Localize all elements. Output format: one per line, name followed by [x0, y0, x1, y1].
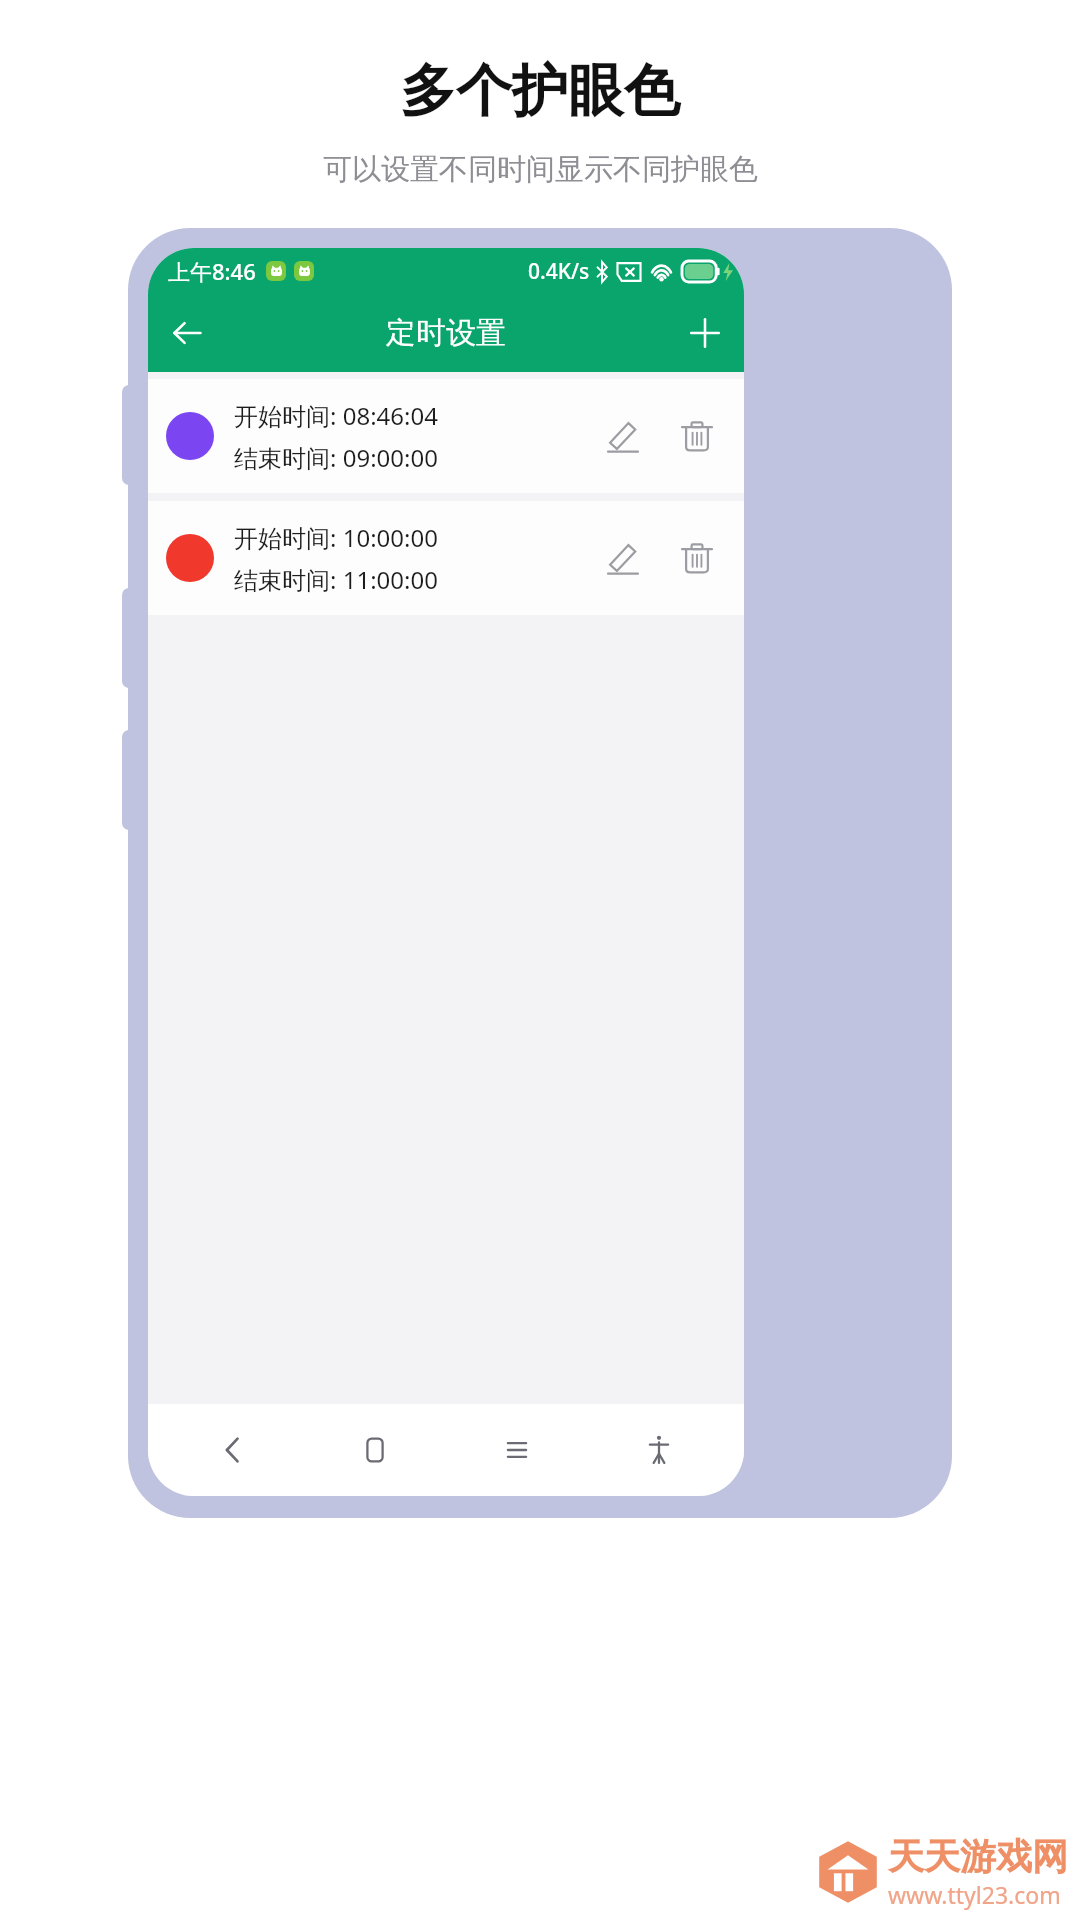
button[interactable]: Add	[674, 302, 736, 364]
staticText: 天天游戏网	[888, 1834, 1068, 1879]
staticText: 上午8:46	[168, 256, 256, 286]
button[interactable]: Home	[304, 1404, 446, 1496]
staticText: 0.4K/s	[528, 257, 590, 286]
button[interactable]: Edit	[594, 529, 652, 587]
button[interactable]: 开始时间: 08:46:04	[148, 379, 744, 493]
staticText: www.ttyl23.com	[888, 1879, 1061, 1910]
button[interactable]: Back	[162, 1404, 304, 1496]
staticText: 定时设置	[386, 314, 506, 352]
button[interactable]: Delete	[668, 529, 726, 587]
button[interactable]: Accessibility	[588, 1404, 730, 1496]
button[interactable]: 开始时间: 10:00:00	[148, 501, 744, 615]
staticText: 开始时间: 08:46:04	[234, 399, 438, 432]
button[interactable]: Edit	[594, 407, 652, 465]
staticText: 结束时间: 11:00:00	[234, 563, 438, 596]
button[interactable]: Back	[156, 302, 218, 364]
button[interactable]: Recents	[446, 1404, 588, 1496]
staticText: 结束时间: 09:00:00	[234, 441, 438, 474]
staticText: 开始时间: 10:00:00	[234, 521, 438, 554]
staticText: 多个护眼色	[400, 56, 680, 127]
button[interactable]: Delete	[668, 407, 726, 465]
staticText: 可以设置不同时间显示不同护眼色	[323, 151, 758, 188]
